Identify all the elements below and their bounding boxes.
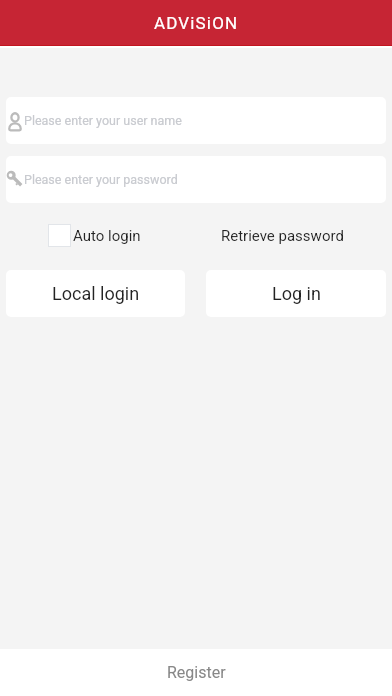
staticText: Auto login (73, 227, 141, 245)
button[interactable]: Local login (6, 270, 185, 317)
button[interactable]: Please enter your user name (6, 97, 386, 144)
staticText: Local login (52, 283, 140, 304)
staticText: Please enter your password (24, 172, 178, 187)
button[interactable]: Log in (206, 270, 386, 317)
button[interactable]: Auto login (48, 224, 141, 247)
button[interactable]: Retrieve password (221, 227, 344, 245)
staticText: Register (167, 663, 226, 682)
button[interactable]: Please enter your password (6, 156, 386, 203)
button[interactable]: Register (0, 649, 392, 696)
staticText: Retrieve password (221, 227, 344, 245)
staticText: Log in (272, 283, 321, 304)
staticText: Please enter your user name (24, 113, 182, 128)
staticText: ADViSiON (154, 13, 239, 33)
